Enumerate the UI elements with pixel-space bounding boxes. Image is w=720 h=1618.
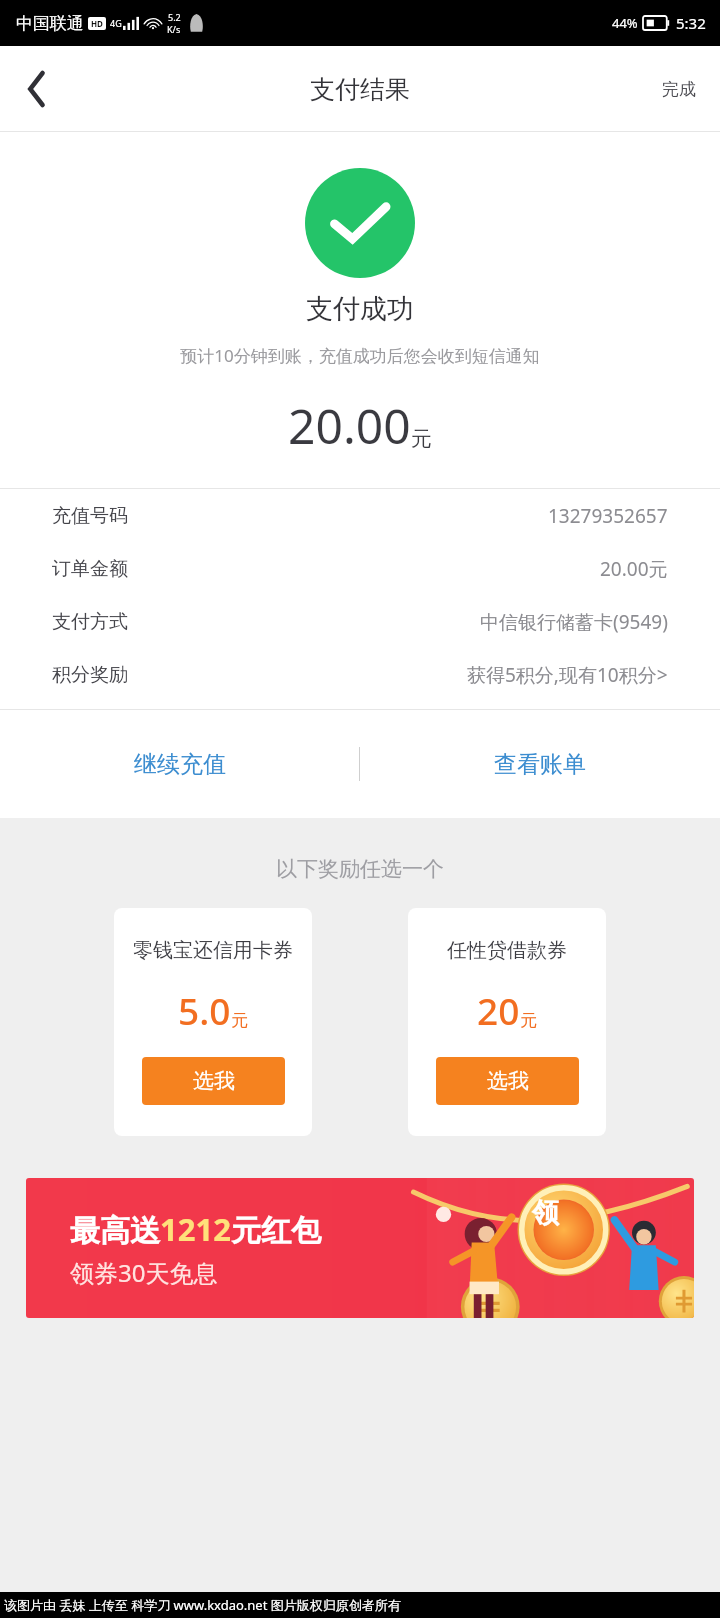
staticText: 中国联通 xyxy=(16,13,84,34)
staticText: HD xyxy=(91,18,103,29)
staticText: 零钱宝还信用卡券 xyxy=(114,938,312,963)
staticText: 4G xyxy=(110,17,122,29)
staticText: 该图片由 丢妹 上传至 科学刀 www.kxdao.net 图片版权归原创者所有 xyxy=(4,1596,401,1614)
staticText: 以下奖励任选一个 xyxy=(0,856,720,882)
staticText: 20.00 xyxy=(288,393,411,458)
button[interactable]: Back xyxy=(6,58,68,120)
staticText: 预计10分钟到账，充值成功后您会收到短信通知 xyxy=(0,344,720,367)
staticText: 领券30天免息 xyxy=(70,1256,218,1289)
staticText: 元 xyxy=(231,1010,248,1031)
staticText: 选我 xyxy=(487,1068,529,1094)
staticText: 5:32 xyxy=(676,13,706,33)
staticText: 1212 xyxy=(160,1208,231,1250)
staticText: 支付成功 xyxy=(0,292,720,326)
staticText: 任性贷借款券 xyxy=(408,938,606,963)
button[interactable]: 零钱宝还信用卡券 xyxy=(114,908,312,1136)
staticText: 订单金额 xyxy=(52,557,128,581)
staticText: 继续充值 xyxy=(134,750,226,779)
staticText: 领 xyxy=(532,1196,559,1230)
button[interactable]: 任性贷借款券 xyxy=(408,908,606,1136)
staticText: 支付结果 xyxy=(310,74,410,105)
staticText: 最高送 xyxy=(70,1212,160,1250)
button[interactable]: 选我 xyxy=(142,1057,285,1105)
staticText: 元 xyxy=(411,426,432,452)
staticText: 中信银行储蓄卡(9549) xyxy=(480,609,668,635)
button[interactable]: 选我 xyxy=(436,1057,579,1105)
button[interactable]: 继续充值 xyxy=(0,710,359,818)
staticText: 充值号码 xyxy=(52,504,128,528)
staticText: 20.00元 xyxy=(600,556,668,582)
staticText: K/s xyxy=(167,23,181,35)
button[interactable]: 查看账单 xyxy=(360,710,720,818)
button[interactable]: 完成 xyxy=(648,67,710,112)
staticText: 获得5积分,现有10积分> xyxy=(467,662,668,688)
staticText: 选我 xyxy=(193,1068,235,1094)
staticText: 元 xyxy=(520,1010,537,1031)
staticText: 查看账单 xyxy=(494,750,586,779)
button[interactable]: 积分奖励 xyxy=(0,648,720,701)
staticText: 20 xyxy=(477,985,520,1035)
button[interactable]: 最高送1212元红包 领券30天免息 xyxy=(26,1178,694,1318)
staticText: 完成 xyxy=(662,79,696,100)
staticText: 5.2 xyxy=(168,11,181,23)
staticText: 44% xyxy=(612,14,638,32)
staticText: 积分奖励 xyxy=(52,663,128,687)
staticText: 支付方式 xyxy=(52,610,128,634)
staticText: 5.0 xyxy=(178,985,231,1035)
staticText: 元红包 xyxy=(231,1212,321,1250)
staticText: 13279352657 xyxy=(548,503,668,529)
